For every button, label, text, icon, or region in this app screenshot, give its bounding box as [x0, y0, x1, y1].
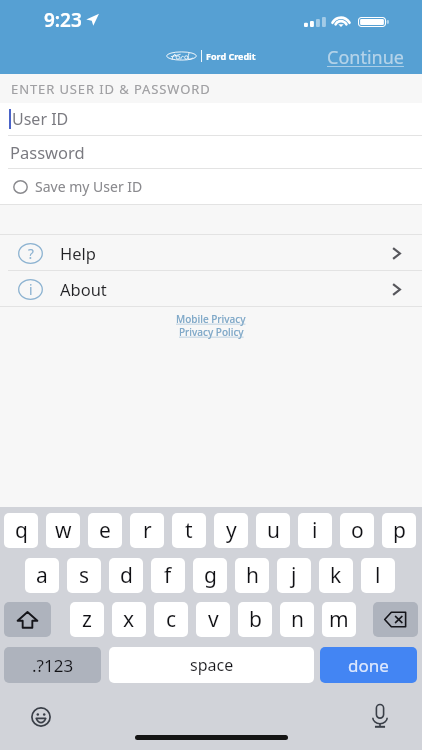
staticText: Ford Credit	[206, 50, 256, 62]
button[interactable]: Backspace	[373, 602, 418, 637]
staticText: User ID	[12, 108, 69, 130]
button[interactable]: ?	[0, 235, 422, 270]
staticText: i	[312, 516, 318, 545]
staticText: Help	[60, 242, 96, 264]
button[interactable]: done	[320, 647, 417, 683]
button[interactable]: User ID	[0, 103, 422, 135]
staticText: u	[267, 516, 280, 545]
staticText: t	[185, 516, 193, 545]
staticText: g	[204, 561, 217, 590]
button[interactable]: c	[154, 602, 188, 637]
staticText: q	[15, 516, 28, 545]
staticText: z	[82, 605, 92, 634]
staticText: f	[164, 561, 172, 590]
button[interactable]: u	[256, 513, 290, 548]
button[interactable]: w	[46, 513, 80, 548]
button[interactable]: Continue	[327, 45, 404, 67]
button[interactable]: h	[235, 558, 269, 593]
button[interactable]: d	[109, 558, 143, 593]
staticText: d	[120, 561, 133, 590]
staticText: space	[190, 654, 234, 676]
staticText: y	[226, 516, 237, 545]
staticText: done	[348, 654, 389, 677]
button[interactable]: s	[67, 558, 101, 593]
button[interactable]: Privacy Policy	[179, 325, 244, 339]
button[interactable]: q	[4, 513, 38, 548]
button[interactable]: y	[214, 513, 248, 548]
staticText: j	[291, 561, 297, 590]
button[interactable]: z	[70, 602, 104, 637]
button[interactable]: Emoji keyboard	[27, 703, 55, 731]
staticText: Privacy Policy	[179, 325, 244, 339]
staticText: e	[99, 516, 111, 545]
button[interactable]: l	[361, 558, 395, 593]
button[interactable]: n	[280, 602, 314, 637]
staticText: s	[79, 561, 90, 590]
staticText: n	[291, 605, 304, 634]
button[interactable]: Shift	[4, 602, 51, 637]
staticText: a	[36, 561, 48, 590]
staticText: Continue	[327, 45, 404, 67]
button[interactable]: Dictation	[366, 702, 394, 730]
staticText: r	[143, 516, 152, 545]
staticText: ENTER USER ID & PASSWORD	[11, 80, 211, 98]
staticText: .?123	[32, 654, 74, 677]
button[interactable]: p	[382, 513, 416, 548]
staticText: i	[29, 281, 33, 299]
staticText: About	[60, 278, 107, 300]
staticText: k	[330, 561, 342, 590]
button[interactable]: a	[25, 558, 59, 593]
button[interactable]: .?123	[4, 647, 101, 683]
staticText: b	[249, 605, 262, 634]
staticText: w	[55, 516, 72, 545]
button[interactable]: x	[112, 602, 146, 637]
staticText: v	[208, 605, 219, 634]
staticText: p	[393, 516, 406, 545]
staticText: c	[166, 605, 177, 634]
button[interactable]: e	[88, 513, 122, 548]
button[interactable]: i	[298, 513, 332, 548]
staticText: o	[351, 516, 364, 545]
button[interactable]: f	[151, 558, 185, 593]
staticText: Save my User ID	[35, 177, 143, 196]
staticText: ?	[28, 245, 34, 263]
staticText: Password	[10, 141, 85, 163]
button[interactable]: k	[319, 558, 353, 593]
button[interactable]: i	[0, 271, 422, 306]
staticText: h	[246, 561, 259, 590]
button[interactable]: v	[196, 602, 230, 637]
button[interactable]: Save my User ID	[0, 169, 422, 204]
button[interactable]: t	[172, 513, 206, 548]
button[interactable]: g	[193, 558, 227, 593]
button[interactable]: o	[340, 513, 374, 548]
staticText: x	[123, 605, 135, 634]
button[interactable]: r	[130, 513, 164, 548]
staticText: 9:23	[44, 7, 82, 33]
button[interactable]: Password	[0, 136, 422, 168]
button[interactable]: b	[238, 602, 272, 637]
button[interactable]: space	[109, 647, 314, 683]
staticText: Mobile Privacy	[176, 312, 246, 326]
staticText: m	[329, 605, 349, 634]
button[interactable]: m	[322, 602, 356, 637]
button[interactable]: Mobile Privacy	[176, 312, 246, 326]
button[interactable]: j	[277, 558, 311, 593]
staticText: l	[375, 561, 381, 590]
